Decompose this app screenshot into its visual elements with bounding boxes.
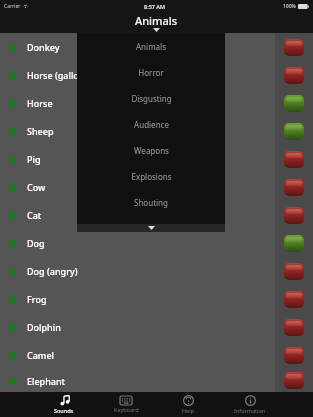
staticText: Audience: [134, 119, 169, 130]
button[interactable]: Keyboard: [95, 392, 157, 417]
staticText: Donkey: [27, 41, 60, 53]
staticText: Information: [234, 407, 266, 414]
button[interactable]: Frog: [0, 285, 275, 313]
button[interactable]: Record sound: [284, 179, 304, 196]
staticText: Sheep: [27, 125, 54, 137]
button[interactable]: Horse: [0, 89, 275, 117]
button[interactable]: Record sound: [284, 123, 304, 140]
button[interactable]: Dolphin: [0, 313, 275, 341]
button[interactable]: Record sound: [284, 291, 304, 308]
button[interactable]: Help: [157, 392, 219, 417]
button[interactable]: Audience: [77, 111, 225, 137]
button[interactable]: Sounds: [33, 392, 95, 417]
button[interactable]: Record sound: [284, 235, 304, 252]
button[interactable]: Information: [219, 392, 281, 417]
button[interactable]: Dog (angry): [0, 257, 275, 285]
button[interactable]: Explosions: [77, 163, 225, 189]
button[interactable]: Record sound: [284, 372, 304, 389]
staticText: Help: [182, 407, 194, 414]
button[interactable]: Cow: [0, 173, 275, 201]
staticText: Cat: [27, 209, 42, 221]
staticText: 100%: [283, 3, 296, 10]
staticText: Explosions: [131, 171, 172, 182]
button[interactable]: Camel: [0, 341, 275, 369]
button[interactable]: Dog: [0, 229, 275, 257]
button[interactable]: Record sound: [284, 347, 304, 364]
staticText: Weapons: [134, 145, 169, 156]
staticText: Horse (galloping): [27, 69, 101, 81]
button[interactable]: Horror: [77, 59, 225, 85]
button[interactable]: Record sound: [284, 207, 304, 224]
staticText: Dolphin: [27, 321, 61, 333]
button[interactable]: Sheep: [0, 117, 275, 145]
staticText: Horror: [138, 67, 164, 78]
button[interactable]: Record sound: [284, 263, 304, 280]
staticText: Animals: [136, 41, 166, 52]
staticText: Shouting: [134, 197, 168, 208]
staticText: Keyboard: [114, 406, 139, 413]
button[interactable]: Shouting: [77, 189, 225, 215]
button[interactable]: Record sound: [284, 39, 304, 56]
button[interactable]: Elephant: [0, 369, 275, 392]
staticText: Elephant: [27, 375, 66, 387]
button[interactable]: Cat: [0, 201, 275, 229]
staticText: 8:57 AM: [144, 3, 166, 10]
button[interactable]: Donkey: [0, 33, 275, 61]
staticText: Dog (angry): [27, 265, 78, 277]
staticText: Animals: [135, 13, 178, 28]
staticText: Camel: [27, 349, 54, 361]
button[interactable]: Record sound: [284, 67, 304, 84]
staticText: Pig: [27, 153, 41, 165]
staticText: Horse: [27, 97, 53, 109]
button[interactable]: Collapse categories: [77, 224, 225, 232]
button[interactable]: Disgusting: [77, 85, 225, 111]
button[interactable]: Weapons: [77, 137, 225, 163]
button[interactable]: Animals: [0, 12, 313, 33]
button[interactable]: Horse (galloping): [0, 61, 275, 89]
staticText: Cow: [27, 181, 46, 193]
button[interactable]: Pig: [0, 145, 275, 173]
button[interactable]: Animals: [77, 33, 225, 59]
staticText: Dog: [27, 237, 45, 249]
staticText: Disgusting: [131, 93, 172, 104]
staticText: Sounds: [54, 407, 74, 414]
button[interactable]: Record sound: [284, 319, 304, 336]
button[interactable]: Record sound: [284, 151, 304, 168]
staticText: Frog: [27, 293, 47, 305]
staticText: Carrier: [4, 3, 21, 10]
button[interactable]: Record sound: [284, 95, 304, 112]
